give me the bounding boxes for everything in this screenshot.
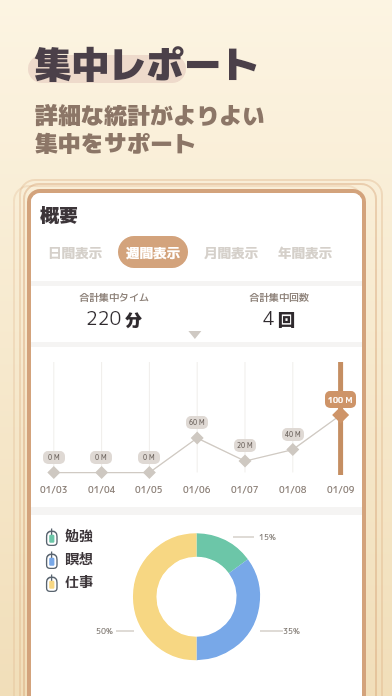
staticText: 分 bbox=[125, 308, 142, 332]
button[interactable]: 週間表示 bbox=[118, 236, 188, 268]
staticText: 01/07 bbox=[231, 483, 259, 496]
staticText: 月間表示 bbox=[204, 243, 258, 262]
button[interactable]: 日間表示 bbox=[44, 236, 106, 268]
staticText: 回 bbox=[278, 308, 295, 332]
button[interactable]: 月間表示 bbox=[200, 236, 262, 268]
staticText: 合計集中タイム bbox=[79, 290, 149, 304]
staticText: 60 M bbox=[189, 418, 205, 427]
staticText: 40 M bbox=[285, 430, 301, 439]
staticText: 概要 bbox=[40, 202, 79, 229]
staticText: 詳細な統計がよりよい 集中をサポート bbox=[35, 99, 265, 160]
staticText: 01/04 bbox=[88, 483, 116, 496]
staticText: 01/09 bbox=[327, 483, 355, 496]
staticText: 日間表示 bbox=[48, 243, 102, 262]
staticText: 01/05 bbox=[135, 483, 163, 496]
staticText: 50% bbox=[96, 625, 113, 636]
staticText: 35% bbox=[283, 625, 300, 636]
staticText: 0 M bbox=[95, 453, 107, 462]
staticText: 仕事 bbox=[65, 572, 93, 592]
button[interactable]: 年間表示 bbox=[274, 236, 336, 268]
staticText: 勉強 bbox=[65, 526, 93, 546]
staticText: 合計集中回数 bbox=[249, 290, 309, 304]
staticText: 100 M bbox=[328, 394, 353, 405]
staticText: 瞑想 bbox=[65, 549, 93, 569]
staticText: 週間表示 bbox=[126, 243, 180, 262]
staticText: 01/08 bbox=[279, 483, 307, 496]
staticText: 集中レポート bbox=[34, 38, 259, 90]
staticText: 15% bbox=[259, 531, 276, 542]
staticText: 年間表示 bbox=[278, 243, 332, 262]
staticText: 20 M bbox=[237, 441, 253, 450]
staticText: 220 bbox=[86, 305, 122, 332]
staticText: 0 M bbox=[48, 453, 60, 462]
staticText: 01/03 bbox=[40, 483, 68, 496]
staticText: 4 bbox=[263, 305, 275, 332]
staticText: 0 M bbox=[143, 453, 155, 462]
staticText: 01/06 bbox=[183, 483, 211, 496]
